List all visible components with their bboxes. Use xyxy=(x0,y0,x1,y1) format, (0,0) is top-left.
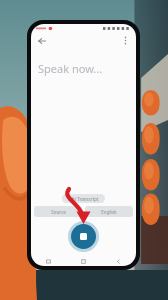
staticText: Speak now... xyxy=(38,61,103,76)
staticText: English xyxy=(101,209,117,215)
staticText: Edit Transcript xyxy=(68,196,99,202)
button[interactable]: Back xyxy=(34,33,49,48)
button[interactable]: Recents xyxy=(31,256,66,266)
button[interactable]: Stop recording xyxy=(68,221,99,252)
button[interactable]: Source xyxy=(34,206,82,217)
button[interactable]: Edit Transcript xyxy=(62,194,105,203)
button[interactable]: Back xyxy=(101,256,136,266)
staticText: Source xyxy=(51,209,66,215)
button[interactable]: Home xyxy=(66,256,101,266)
button[interactable]: English xyxy=(85,206,133,217)
button[interactable]: More options xyxy=(118,33,133,48)
